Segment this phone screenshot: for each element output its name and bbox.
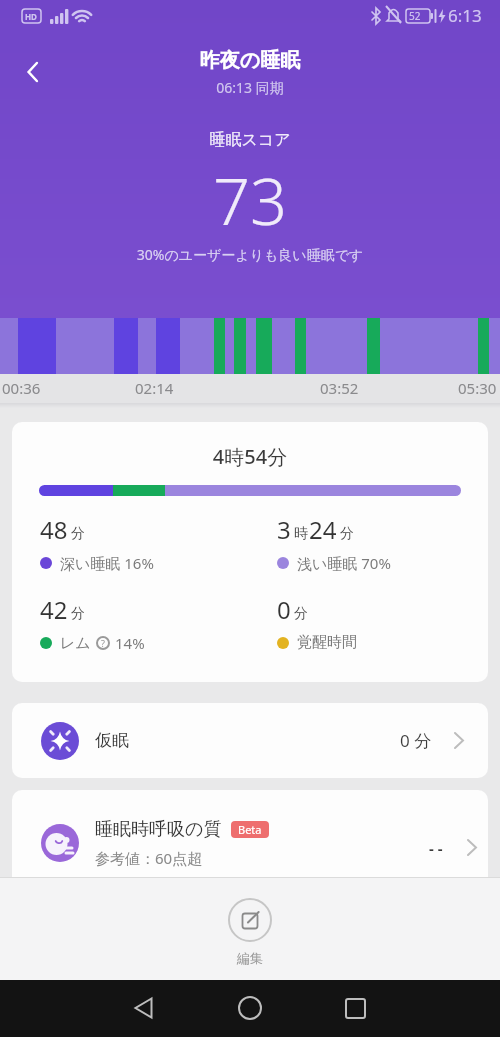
- staticText: ?: [101, 637, 105, 649]
- staticText: - -: [429, 838, 443, 858]
- staticText: 分: [71, 525, 85, 543]
- staticText: 分: [294, 605, 308, 623]
- button[interactable]: [335, 988, 375, 1028]
- staticText: 6:13: [448, 4, 482, 27]
- staticText: 参考値：60点超: [95, 848, 203, 868]
- button[interactable]: [123, 988, 163, 1028]
- staticText: 時: [294, 525, 308, 543]
- staticText: 浅い睡眠 70%: [297, 553, 391, 573]
- staticText: 48: [40, 513, 68, 546]
- button[interactable]: [14, 52, 54, 92]
- staticText: 仮眠: [95, 730, 129, 751]
- staticText: 24: [309, 513, 337, 546]
- staticText: 73: [0, 156, 500, 245]
- button[interactable]: 睡眠時呼吸の質: [12, 790, 488, 910]
- staticText: 4時54分: [12, 443, 488, 470]
- staticText: 0: [277, 593, 291, 626]
- staticText: 42: [40, 593, 68, 626]
- button[interactable]: 仮眠: [12, 703, 488, 778]
- staticText: HD: [25, 11, 37, 22]
- staticText: 深い睡眠 16%: [60, 553, 154, 573]
- staticText: 0 分: [400, 729, 432, 752]
- staticText: 05:30: [458, 378, 497, 398]
- staticText: 00:36: [2, 378, 41, 398]
- staticText: 03:52: [320, 378, 359, 398]
- staticText: 14%: [115, 633, 145, 653]
- staticText: 昨夜の睡眠: [0, 48, 500, 73]
- staticText: 睡眠スコア: [0, 130, 500, 150]
- staticText: 52: [409, 9, 421, 23]
- staticText: Beta: [238, 822, 262, 837]
- staticText: 覚醒時間: [297, 633, 357, 652]
- staticText: 02:14: [135, 378, 174, 398]
- staticText: レム: [60, 634, 91, 653]
- staticText: 30%のユーザーよりも良い睡眠です: [0, 245, 500, 264]
- staticText: 編集: [237, 950, 263, 966]
- button[interactable]: [230, 988, 270, 1028]
- staticText: 分: [71, 605, 85, 623]
- button[interactable]: [228, 898, 272, 942]
- staticText: 分: [340, 525, 354, 543]
- staticText: 3: [277, 513, 291, 546]
- staticText: 睡眠時呼吸の質: [95, 818, 222, 841]
- staticText: 06:13 同期: [0, 78, 500, 97]
